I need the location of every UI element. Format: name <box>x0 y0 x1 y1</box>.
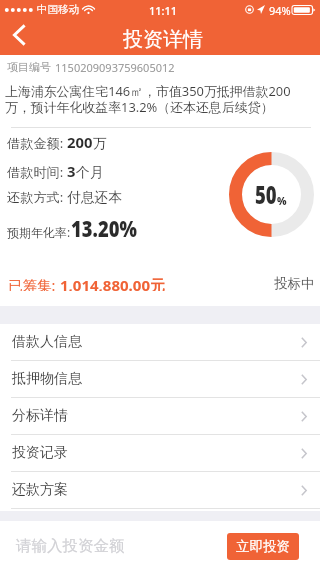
staticText: 付息还本 <box>67 189 123 206</box>
staticText: 投资记录 <box>12 444 68 462</box>
staticText: 借款人信息 <box>12 333 82 351</box>
button[interactable]: 立即投资 <box>227 533 299 560</box>
button[interactable]: 分标详情 <box>0 398 320 435</box>
staticText: 项目编号 <box>7 60 51 74</box>
button[interactable]: Back <box>0 20 40 55</box>
staticText: 1150209093759605012 <box>55 60 175 75</box>
staticText: 分标详情 <box>12 407 68 425</box>
staticText: 投标中 <box>274 275 315 291</box>
button[interactable]: 投资记录 <box>0 435 320 472</box>
staticText: 94% <box>269 3 291 18</box>
button[interactable]: 还款方案 <box>0 472 320 509</box>
staticText: 请输入投资金额 <box>16 536 125 556</box>
staticText: 11:11 <box>149 3 178 18</box>
button[interactable]: 请输入投资金额 <box>10 521 218 570</box>
staticText: 立即投资 <box>236 538 290 555</box>
staticText: 个月 <box>76 164 104 181</box>
staticText: 中国移动 <box>37 3 79 16</box>
staticText: 1,014,880.00元 <box>60 275 165 291</box>
button[interactable]: 借款人信息 <box>0 324 320 361</box>
staticText: 13.20% <box>71 212 137 243</box>
staticText: 已筹集: <box>8 275 60 291</box>
staticText: 投资详情 <box>123 27 203 52</box>
staticText: 200 <box>67 132 93 152</box>
staticText: % <box>277 194 287 208</box>
staticText: 上海浦东公寓住宅146㎡，市值350万抵押借款200万，预计年化收益率13.2%… <box>5 82 303 116</box>
staticText: 50 <box>255 177 277 211</box>
button[interactable]: 抵押物信息 <box>0 361 320 398</box>
staticText: 抵押物信息 <box>12 370 82 388</box>
staticText: 预期年化率: <box>7 224 74 240</box>
staticText: 借款金额: <box>7 134 67 152</box>
staticText: 万 <box>93 135 107 152</box>
staticText: 还款方式: <box>7 188 67 206</box>
staticText: 借款时间: <box>7 163 67 181</box>
staticText: 3 <box>67 161 76 181</box>
staticText: 还款方案 <box>12 481 68 499</box>
